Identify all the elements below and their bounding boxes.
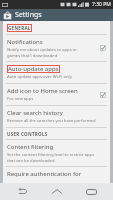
- button[interactable]: Google Play: [0, 9, 113, 21]
- staticText: Add icon to Home screen: [7, 87, 78, 95]
- staticText: 7:30 PM: [92, 1, 111, 8]
- button[interactable]: Add icon to Home screen: [3, 84, 110, 106]
- staticText: GENERAL: [8, 25, 31, 31]
- button[interactable]: Auto-update apps: [3, 62, 110, 84]
- other: Google Play: [3, 11, 12, 20]
- button[interactable]: Notifications: [3, 35, 110, 62]
- button[interactable]: Back: [9, 183, 35, 200]
- staticText: Set the content filtering level to restr…: [7, 152, 95, 163]
- button[interactable]: Content filtering: [3, 140, 110, 167]
- button[interactable]: Home: [44, 183, 70, 200]
- staticText: Remove all the searches you have perform…: [7, 118, 96, 124]
- staticText: Settings: [15, 10, 42, 20]
- staticText: Auto-update apps: [8, 65, 59, 73]
- button[interactable]: Clear search history: [3, 106, 110, 128]
- button[interactable]: Notifications toggle: [100, 45, 106, 51]
- button[interactable]: Require authentication for purchases: [3, 167, 110, 183]
- button[interactable]: Add icon to Home screen toggle: [100, 92, 106, 98]
- staticText: Require authentication for purchases: [7, 170, 106, 180]
- staticText: Notifications: [7, 38, 43, 46]
- staticText: For new apps: [7, 96, 34, 102]
- staticText: Clear search history: [7, 109, 63, 117]
- staticText: USER CONTROLS: [7, 131, 48, 137]
- staticText: Content filtering: [7, 143, 54, 151]
- staticText: Notify me about updates to apps or games…: [7, 47, 78, 58]
- staticText: Auto update apps over Wi-Fi only: [7, 74, 72, 80]
- button[interactable]: Recent apps: [78, 183, 104, 200]
